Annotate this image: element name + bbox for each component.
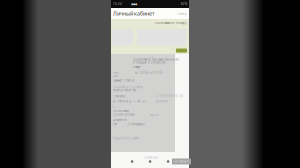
staticText: Способ оплаты: [112, 113, 134, 116]
button[interactable]: Search: [176, 48, 187, 52]
staticText: +7 999 000 00 00: [155, 94, 183, 98]
staticText: ул. Ленина, д. 1, кв. 25: [112, 99, 146, 103]
staticText: картой: [150, 113, 159, 116]
staticText: доставка: [156, 99, 167, 103]
staticText: Сумма: 1 980 р: [112, 79, 134, 82]
staticText: г. Москва: [112, 94, 124, 98]
staticText: Показать ещё: [142, 156, 157, 159]
staticText: Подробнее о заказе: [112, 136, 138, 140]
staticText: 10:24: [113, 2, 122, 6]
staticText: Чек: [112, 122, 116, 126]
staticText: и передан в обработку: [133, 61, 165, 64]
staticText: № 12345 от 12.05: [135, 71, 163, 74]
staticText: Здравствуйте! Ваш заказ оформлен: [133, 58, 179, 61]
button[interactable]: Home: [149, 160, 151, 163]
staticText: Получатель и доставка: [112, 85, 142, 89]
staticText: Оплата заказа: [112, 109, 128, 112]
staticText: Счёт-фактура: [128, 122, 144, 126]
staticText: Дата: [112, 74, 117, 77]
staticText: Документы: [112, 118, 126, 121]
staticText: выход: [178, 12, 187, 15]
staticText: Статус: [133, 65, 140, 69]
button[interactable]: Back: [131, 160, 133, 163]
staticText: 1: [112, 105, 114, 109]
staticText: Иванов Иван Ив.: [112, 88, 137, 92]
staticText: Личный кабинет: [113, 10, 154, 17]
staticText: GeekBrains: [174, 160, 189, 163]
staticText: Заказ: [112, 71, 118, 74]
staticText: ●●●: [131, 2, 137, 5]
staticText: 82%: [181, 2, 187, 6]
button[interactable]: Recents: [167, 160, 169, 163]
button[interactable]: выход: [178, 12, 187, 15]
staticText: Поиск заказа по номеру: [155, 21, 186, 25]
